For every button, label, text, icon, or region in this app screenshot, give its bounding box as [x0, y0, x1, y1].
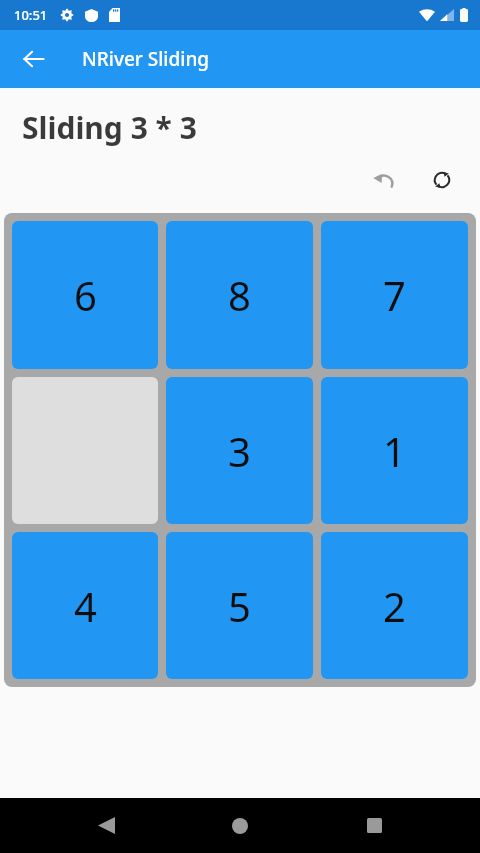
button[interactable]: 8 [166, 221, 313, 369]
staticText: 1 [383, 424, 406, 478]
staticText: 10:51 [14, 6, 48, 24]
button[interactable]: Back [78, 798, 134, 853]
button[interactable]: 7 [321, 221, 468, 369]
staticText: 3 [228, 424, 251, 478]
staticText: Sliding 3 * 3 [22, 107, 197, 148]
staticText: 5 [228, 579, 251, 633]
staticText: NRiver Sliding [82, 46, 210, 72]
button[interactable]: Back [10, 35, 58, 83]
button[interactable]: 5 [166, 532, 313, 679]
button[interactable]: 3 [166, 377, 313, 524]
staticText: 7 [383, 268, 406, 322]
button[interactable]: Undo [362, 158, 406, 202]
staticText: 6 [74, 268, 97, 322]
button[interactable]: Recent apps [346, 798, 402, 853]
staticText: 4 [74, 579, 97, 633]
button[interactable]: Home [212, 798, 268, 853]
button[interactable]: 4 [12, 532, 158, 679]
button[interactable]: 1 [321, 377, 468, 524]
button[interactable]: 6 [12, 221, 158, 369]
button[interactable]: 2 [321, 532, 468, 679]
button[interactable]: Restart [420, 158, 464, 202]
staticText: 2 [383, 579, 406, 633]
staticText: 8 [228, 268, 251, 322]
